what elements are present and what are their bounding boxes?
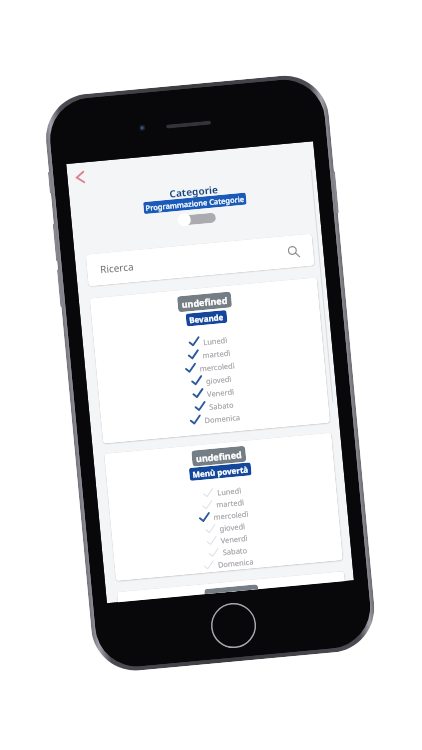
button[interactable]: Back	[70, 167, 90, 188]
staticText: martedì	[216, 497, 245, 510]
button[interactable]: undefined	[117, 571, 345, 602]
staticText: Venerdì	[207, 386, 234, 399]
button[interactable]: undefined	[90, 277, 330, 444]
staticText: Bevande	[189, 311, 224, 325]
staticText: Lunedì	[217, 485, 241, 497]
staticText: mercoledì	[213, 509, 250, 522]
staticText: Programmazione Categorie	[145, 194, 245, 213]
staticText: undefined	[208, 586, 254, 594]
staticText: Sabato	[222, 545, 248, 557]
staticText: Domenica	[204, 412, 241, 425]
button[interactable]: Home	[208, 600, 259, 651]
staticText: mercoledì	[199, 360, 236, 374]
button[interactable]: undefined	[104, 433, 343, 581]
staticText: Venerdì	[220, 533, 248, 545]
staticText: Sabato	[209, 400, 235, 412]
staticText: Lunedì	[203, 335, 228, 347]
button[interactable]: Ricerca	[86, 234, 315, 286]
staticText: giovedì	[205, 374, 232, 386]
staticText: Domenica	[217, 556, 254, 570]
button[interactable]: Toggle programmazione	[177, 210, 216, 227]
staticText: Ricerca	[99, 259, 134, 276]
staticText: undefined	[181, 294, 228, 310]
staticText: Menù povertà	[192, 464, 249, 480]
staticText: martedì	[202, 348, 231, 360]
staticText: undefined	[195, 448, 242, 464]
staticText: giovedì	[219, 521, 246, 533]
staticText: Categorie	[169, 182, 219, 201]
other: Search	[287, 245, 301, 259]
